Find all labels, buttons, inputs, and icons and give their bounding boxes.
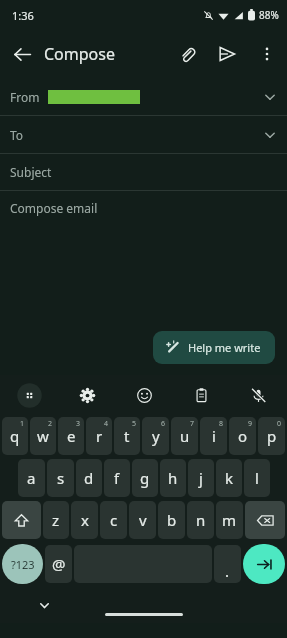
button[interactable]: y [142, 417, 169, 455]
staticText: To [10, 127, 24, 143]
button[interactable]: k [216, 459, 242, 497]
staticText: 8 [219, 419, 224, 429]
staticText: g [140, 468, 150, 488]
button[interactable]: o [229, 417, 256, 455]
staticText: e [67, 426, 76, 446]
button[interactable]: s [47, 459, 74, 497]
staticText: 1:36 [12, 8, 34, 23]
button[interactable]: Back [0, 32, 44, 76]
button[interactable]: q [2, 417, 28, 455]
staticText: Subject [10, 164, 52, 180]
staticText: h [168, 468, 178, 488]
staticText: j [199, 468, 203, 488]
button[interactable]: b [158, 501, 185, 539]
staticText: . [225, 561, 230, 581]
staticText: l [255, 468, 259, 488]
staticText: 3 [76, 419, 81, 429]
button[interactable]: f [104, 459, 130, 497]
staticText: u [180, 426, 190, 446]
staticText: x [81, 510, 89, 530]
staticText: @ [52, 554, 66, 574]
staticText: o [238, 426, 248, 446]
button[interactable]: j [188, 459, 214, 497]
button[interactable]: c [100, 501, 127, 539]
staticText: v [139, 510, 147, 530]
staticText: Compose email [10, 200, 98, 216]
button[interactable]: t [114, 417, 140, 455]
button[interactable]: r [86, 417, 112, 455]
staticText: 2 [48, 419, 53, 429]
button[interactable]: w [30, 417, 56, 455]
button[interactable]: g [132, 459, 158, 497]
staticText: d [84, 468, 94, 488]
staticText: w [37, 426, 49, 446]
staticText: b [167, 510, 177, 530]
button[interactable]: Hide keyboard [32, 593, 56, 617]
button[interactable]: To [0, 116, 287, 153]
button[interactable]: ?123 [2, 544, 43, 584]
staticText: n [196, 510, 206, 530]
staticText: y [152, 426, 160, 446]
button[interactable]: i [200, 417, 227, 455]
button[interactable]: a [18, 459, 45, 497]
staticText: Help me write [188, 340, 261, 355]
button[interactable]: Attach file [167, 34, 207, 74]
button[interactable]: Backspace [245, 501, 285, 539]
staticText: 1 [20, 419, 25, 429]
staticText: k [225, 468, 234, 488]
button[interactable]: u [171, 417, 198, 455]
button[interactable]: Send [207, 34, 247, 74]
staticText: 88% [259, 8, 279, 22]
button[interactable]: h [160, 459, 186, 497]
staticText: t [124, 426, 130, 446]
button[interactable]: Shift [2, 501, 41, 539]
button[interactable]: . [214, 545, 241, 583]
button[interactable]: Compose email [0, 191, 287, 224]
staticText: p [267, 426, 277, 446]
button[interactable]: e [58, 417, 84, 455]
button[interactable]: Microphone off [230, 375, 287, 415]
button[interactable]: Subject [0, 154, 287, 190]
button[interactable]: l [244, 459, 270, 497]
button[interactable]: Help me write [153, 331, 275, 364]
button[interactable]: Enter [243, 544, 285, 584]
button[interactable]: v [129, 501, 156, 539]
staticText: s [57, 468, 65, 488]
staticText: q [10, 426, 20, 446]
staticText: ?123 [11, 557, 35, 572]
staticText: z [52, 510, 60, 530]
button[interactable]: Clipboard [173, 375, 230, 415]
button[interactable]: d [76, 459, 102, 497]
staticText: i [212, 426, 216, 446]
button[interactable]: Emoji [116, 375, 173, 415]
button[interactable]: More options [247, 34, 287, 74]
button[interactable]: x [71, 501, 98, 539]
staticText: From [10, 89, 40, 105]
button[interactable]: @ [45, 545, 72, 583]
button[interactable]: From [0, 78, 287, 115]
staticText: Compose [44, 43, 115, 65]
staticText: a [27, 468, 36, 488]
staticText: 0 [277, 419, 282, 429]
staticText: f [114, 468, 120, 488]
staticText: 6 [161, 419, 166, 429]
staticText: 9 [248, 419, 253, 429]
staticText: 5 [132, 419, 137, 429]
button[interactable]: Settings [58, 375, 116, 415]
staticText: m [222, 510, 237, 530]
button[interactable]: m [216, 501, 243, 539]
staticText: 7 [190, 419, 195, 429]
button[interactable]: n [187, 501, 214, 539]
button[interactable]: z [43, 501, 69, 539]
button[interactable]: p [258, 417, 285, 455]
staticText: r [96, 426, 103, 446]
button[interactable]: Apps [0, 375, 58, 415]
staticText: 4 [104, 419, 109, 429]
staticText: c [110, 510, 118, 530]
